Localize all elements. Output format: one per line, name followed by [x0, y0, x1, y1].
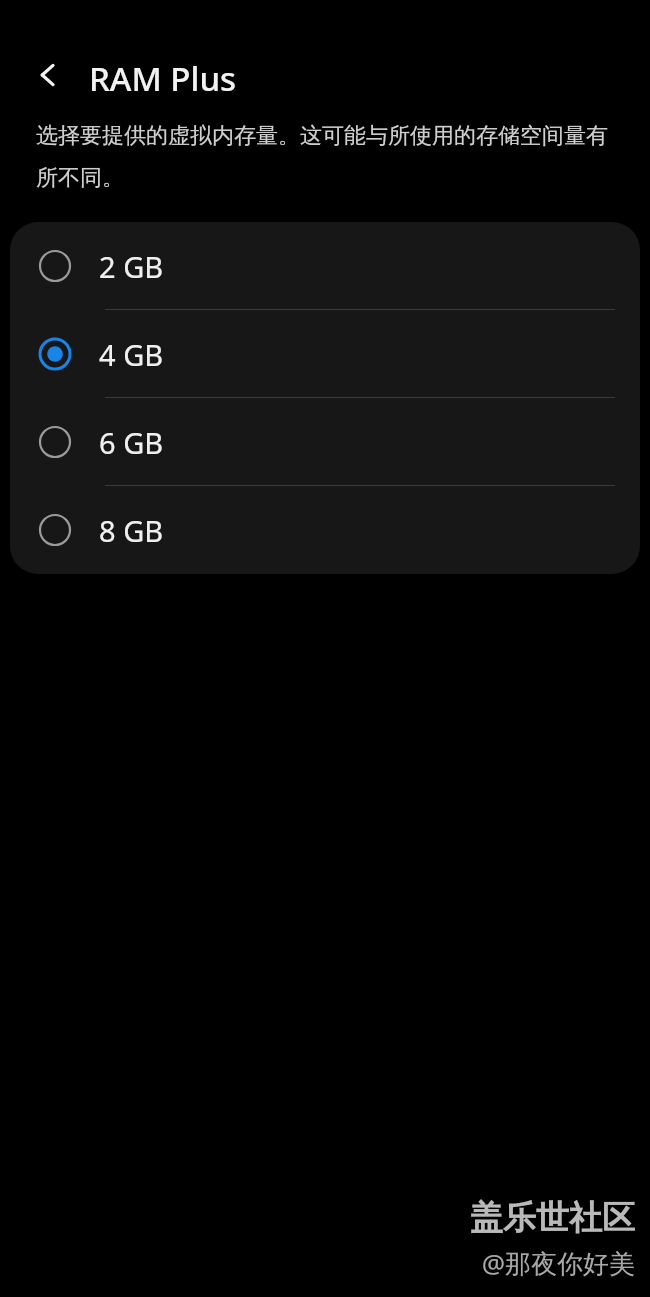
button[interactable]: 4 GB [10, 310, 640, 398]
staticText: 选择要提供的虚拟内存量。这可能与所使用的存储空间量有所不同。 [36, 122, 620, 191]
staticText: 6 GB [99, 423, 164, 462]
button[interactable]: 6 GB [10, 398, 640, 486]
staticText: 盖乐世社区 [470, 1197, 635, 1239]
staticText: RAM Plus [89, 56, 237, 101]
button[interactable]: 2 GB [10, 222, 640, 310]
button[interactable]: 8 GB [10, 486, 640, 574]
staticText: 8 GB [99, 511, 164, 550]
staticText: @那夜你好美 [481, 1245, 635, 1281]
staticText: 4 GB [99, 335, 164, 374]
button[interactable]: Back [20, 45, 80, 105]
staticText: 2 GB [99, 247, 164, 286]
